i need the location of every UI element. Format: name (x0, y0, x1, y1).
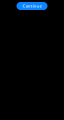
staticText: Continue (22, 3, 41, 9)
button[interactable]: Continue (16, 2, 47, 10)
